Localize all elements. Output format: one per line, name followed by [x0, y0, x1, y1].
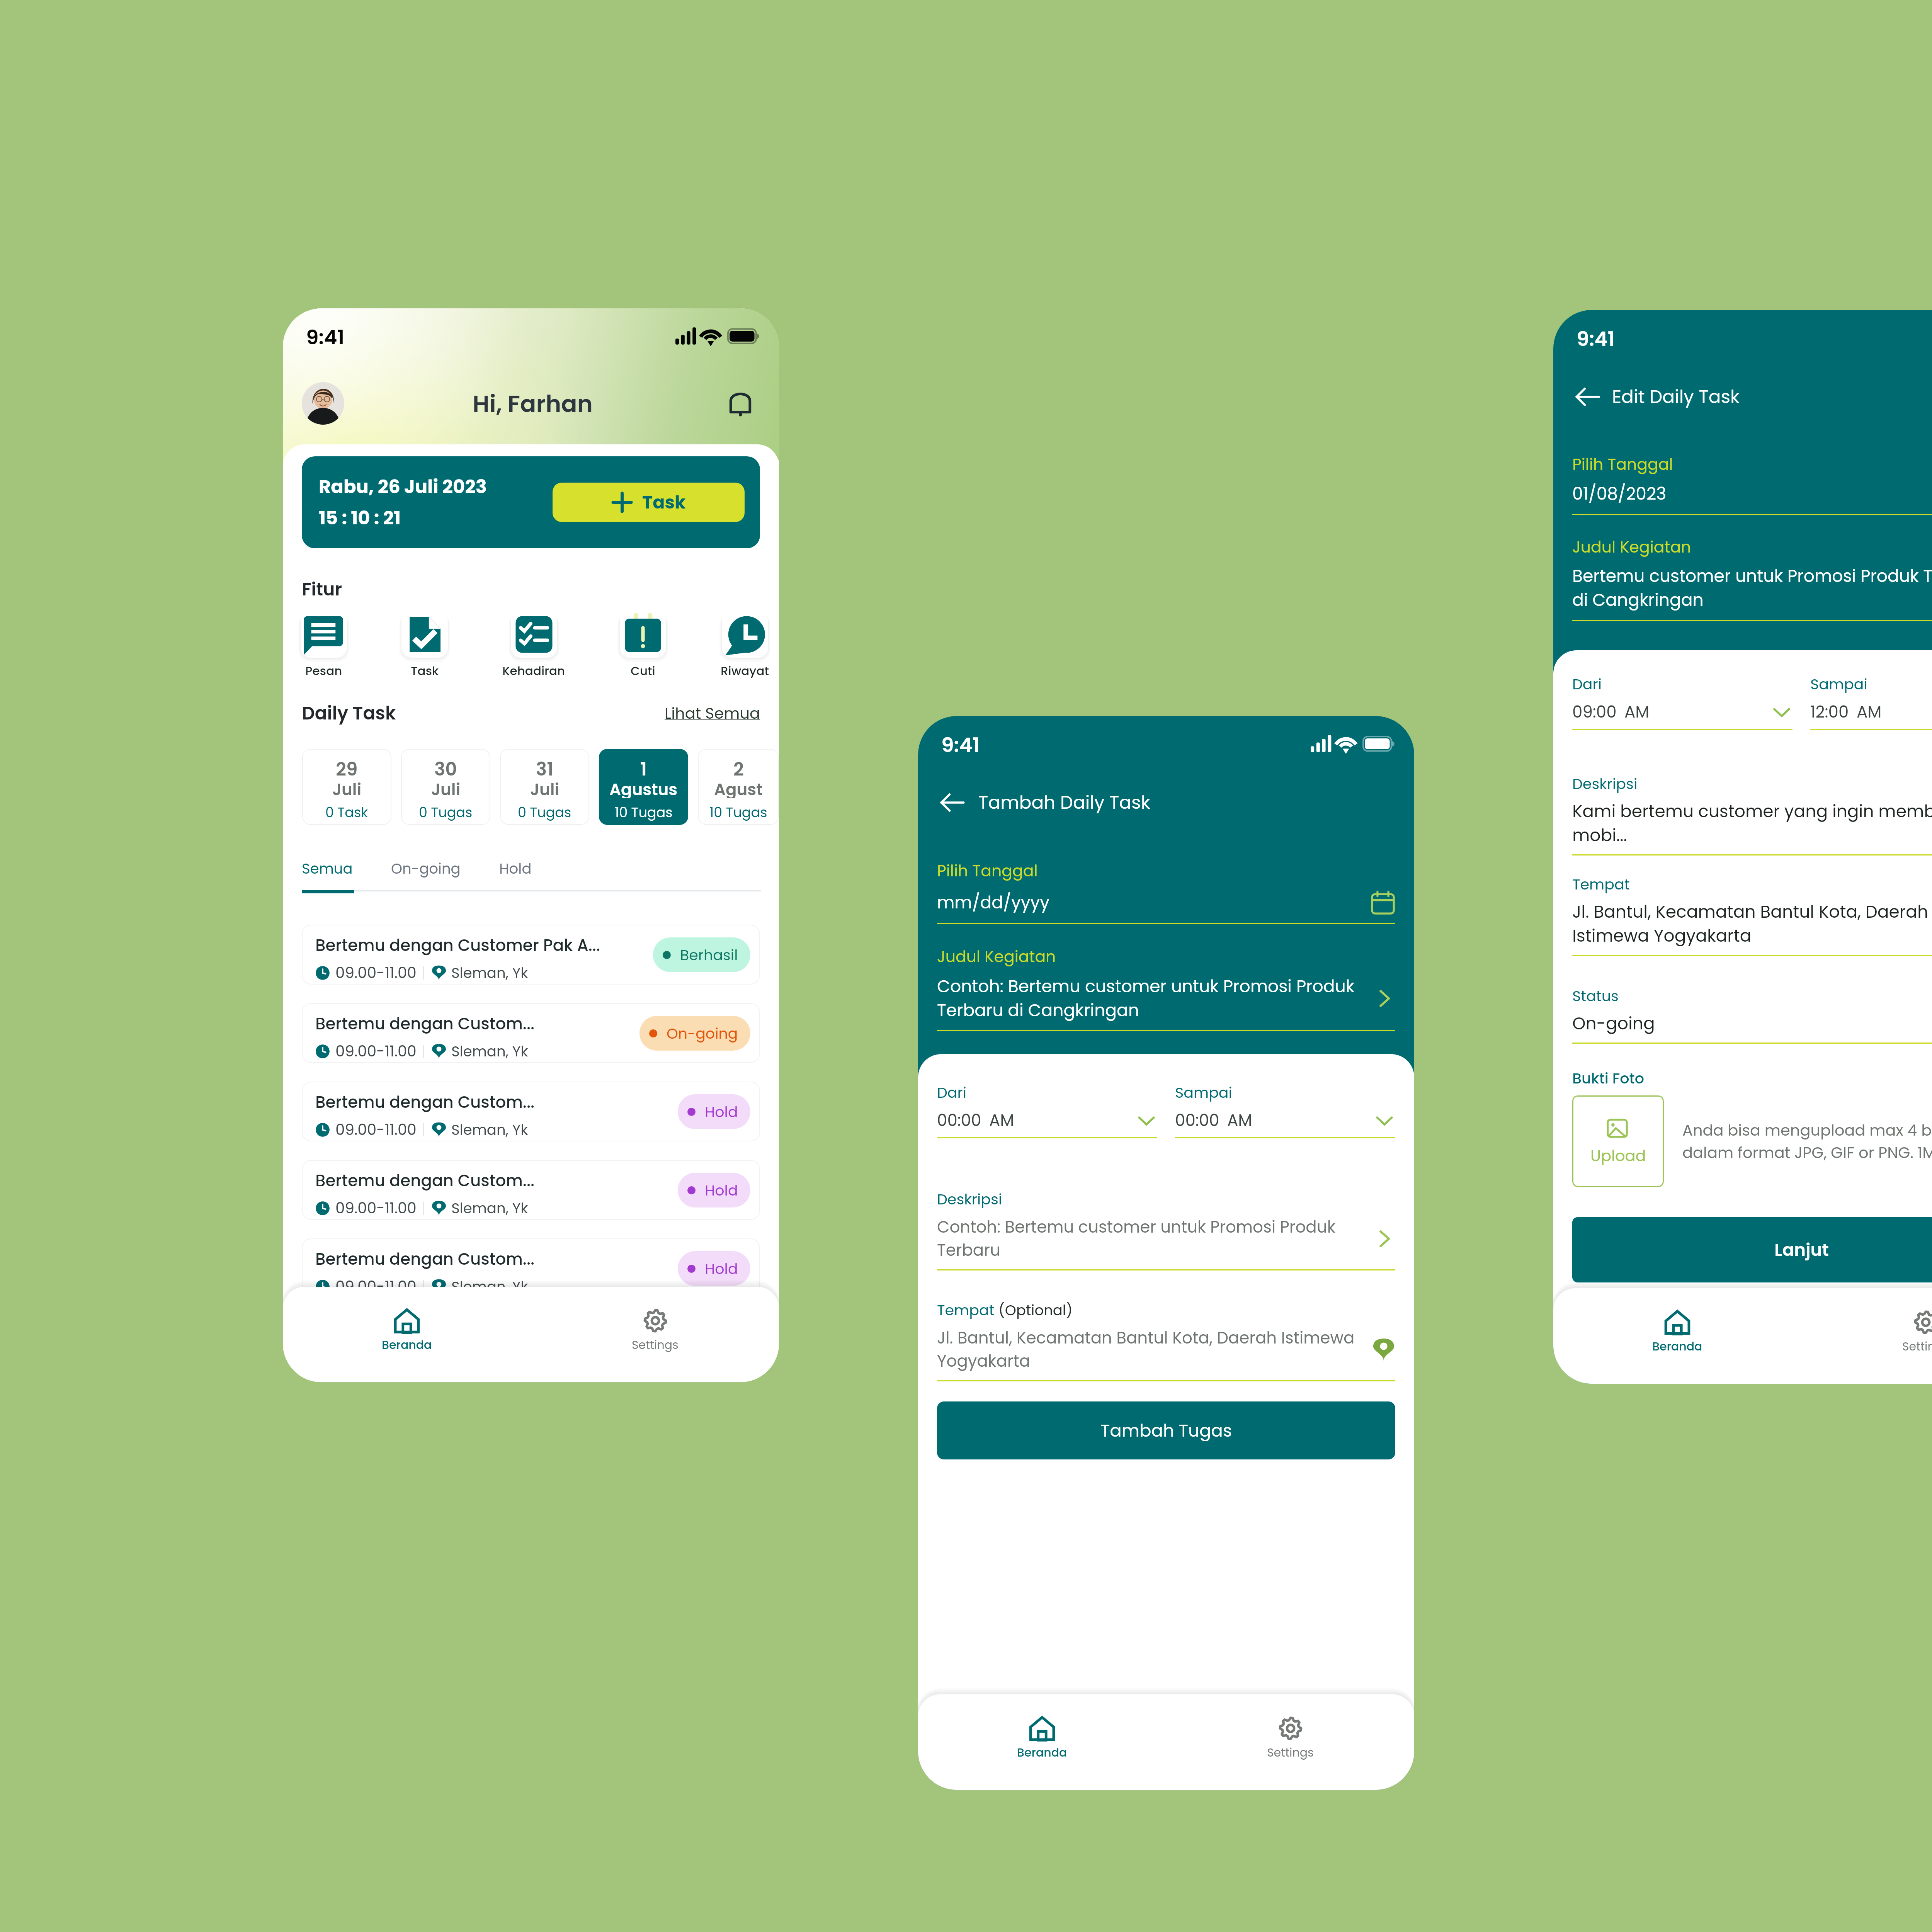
- staticText: Pilih Tanggal: [937, 860, 1038, 882]
- staticText: Tambah Daily Task: [978, 790, 1150, 815]
- button[interactable]: Tambah Tugas: [937, 1401, 1395, 1459]
- staticText: Fitur: [302, 577, 342, 602]
- button[interactable]: Task: [553, 483, 745, 522]
- button[interactable]: Deskripsi: [937, 1189, 1395, 1270]
- staticText: Bertemu dengan Custom...: [315, 1169, 535, 1192]
- staticText: Judul Kegiatan: [937, 946, 1056, 968]
- staticText: Hold: [705, 1259, 738, 1279]
- button[interactable]: Status: [1572, 986, 1932, 1044]
- staticText: Beranda: [382, 1337, 432, 1353]
- staticText: AM: [1857, 701, 1882, 723]
- staticText: Juli: [332, 778, 362, 798]
- staticText: AM: [989, 1109, 1014, 1132]
- button[interactable]: 30: [401, 749, 490, 825]
- staticText: Juli: [530, 778, 560, 798]
- button[interactable]: Bertemu dengan Custom...: [302, 1160, 760, 1220]
- staticText: Tempat: [937, 1300, 995, 1320]
- button[interactable]: Settings: [632, 1308, 679, 1353]
- staticText: AM: [1624, 701, 1650, 723]
- button[interactable]: Bertemu dengan Customer Pak A...: [302, 925, 760, 985]
- staticText: Beranda: [1652, 1338, 1702, 1355]
- button[interactable]: Sampai: [1810, 674, 1932, 730]
- button[interactable]: Rabu, 26 Juli 2023: [302, 456, 760, 548]
- staticText: 00:00: [937, 1109, 981, 1132]
- button[interactable]: Pesan: [301, 611, 347, 679]
- button[interactable]: Beranda: [382, 1308, 432, 1353]
- staticText: 09:00: [1572, 701, 1617, 723]
- staticText: Pesan: [305, 662, 342, 679]
- staticText: Sleman, Yk: [451, 1120, 528, 1140]
- button[interactable]: Settings: [1902, 1309, 1932, 1355]
- staticText: 9:41: [306, 323, 345, 351]
- button[interactable]: Bertemu dengan Custom...: [302, 1238, 760, 1298]
- button[interactable]: Hold: [499, 859, 532, 879]
- button[interactable]: 29: [302, 749, 391, 825]
- button[interactable]: Notifications: [722, 385, 759, 422]
- button[interactable]: Bertemu dengan Custom...: [302, 1082, 760, 1141]
- button[interactable]: Deskripsi: [1572, 774, 1932, 855]
- button[interactable]: Riwayat: [721, 611, 769, 679]
- staticText: 15 : 10 : 21: [319, 505, 401, 531]
- staticText: Sampai: [1175, 1082, 1232, 1103]
- staticText: Dari: [1572, 674, 1602, 694]
- button[interactable]: Lanjut: [1572, 1217, 1932, 1282]
- button[interactable]: Profile: [302, 382, 344, 425]
- button[interactable]: Pilih Tanggal: [1572, 453, 1932, 515]
- staticText: Contoh: Bertemu customer untuk Promosi P…: [937, 975, 1366, 1022]
- staticText: Sampai: [1810, 674, 1867, 694]
- staticText: 0 Tugas: [518, 803, 571, 821]
- staticText: Beranda: [1017, 1745, 1067, 1761]
- staticText: (Optional): [998, 1300, 1073, 1320]
- staticText: 09.00-11.00: [335, 1119, 417, 1140]
- staticText: Bertemu customer untuk Promosi Produk Te…: [1572, 564, 1932, 612]
- staticText: 1: [640, 757, 647, 778]
- staticText: 0 Tugas: [419, 803, 473, 821]
- staticText: Status: [1572, 986, 1619, 1006]
- staticText: 29: [336, 757, 358, 778]
- button[interactable]: Upload: [1572, 1095, 1664, 1187]
- button[interactable]: Tempat: [1572, 874, 1932, 956]
- button[interactable]: Judul Kegiatan: [937, 946, 1395, 1031]
- staticText: Dari: [937, 1082, 967, 1103]
- staticText: 00:00: [1175, 1109, 1219, 1132]
- button[interactable]: On-going: [391, 859, 461, 879]
- button[interactable]: Lihat Semua: [665, 702, 760, 724]
- button[interactable]: Tempat: [937, 1300, 1395, 1381]
- button[interactable]: Dari: [1572, 674, 1793, 730]
- staticText: Daily Task: [302, 701, 396, 726]
- button[interactable]: 1: [599, 749, 688, 825]
- button[interactable]: Dari: [937, 1082, 1157, 1138]
- staticText: Lihat Semua: [665, 702, 760, 724]
- staticText: Judul Kegiatan: [1572, 536, 1691, 558]
- button[interactable]: 31: [500, 749, 589, 825]
- staticText: 10 Tugas: [615, 803, 673, 821]
- staticText: Sleman, Yk: [451, 1198, 528, 1218]
- staticText: Agust: [714, 778, 763, 798]
- button[interactable]: Beranda: [1652, 1309, 1702, 1355]
- button[interactable]: Settings: [1267, 1715, 1314, 1761]
- button[interactable]: Task: [401, 611, 448, 679]
- staticText: Tempat: [1572, 874, 1630, 895]
- staticText: Juli: [431, 778, 461, 798]
- staticText: Cuti: [631, 662, 655, 679]
- button[interactable]: Cuti: [620, 611, 666, 679]
- button[interactable]: Beranda: [1017, 1715, 1067, 1761]
- button[interactable]: Judul Kegiatan: [1572, 536, 1932, 621]
- button[interactable]: Bertemu dengan Custom...: [302, 1003, 760, 1063]
- staticText: Bertemu dengan Custom...: [315, 1248, 535, 1270]
- staticText: Kami bertemu customer yang ingin membeli…: [1572, 799, 1932, 847]
- button[interactable]: 2: [698, 749, 779, 825]
- staticText: Riwayat: [721, 662, 769, 679]
- staticText: 10 Tugas: [709, 803, 767, 821]
- staticText: Hold: [705, 1102, 738, 1122]
- staticText: Sleman, Yk: [451, 1041, 528, 1061]
- button[interactable]: Back: [936, 786, 968, 819]
- button[interactable]: Semua: [302, 859, 353, 879]
- button[interactable]: Kehadiran: [502, 611, 565, 679]
- button[interactable]: Pilih Tanggal: [937, 860, 1395, 924]
- staticText: Upload: [1590, 1145, 1646, 1167]
- button[interactable]: Back: [1571, 381, 1604, 413]
- staticText: Jl. Bantul, Kecamatan Bantul Kota, Daera…: [1572, 900, 1932, 948]
- button[interactable]: Sampai: [1175, 1082, 1395, 1138]
- staticText: On-going: [667, 1023, 738, 1044]
